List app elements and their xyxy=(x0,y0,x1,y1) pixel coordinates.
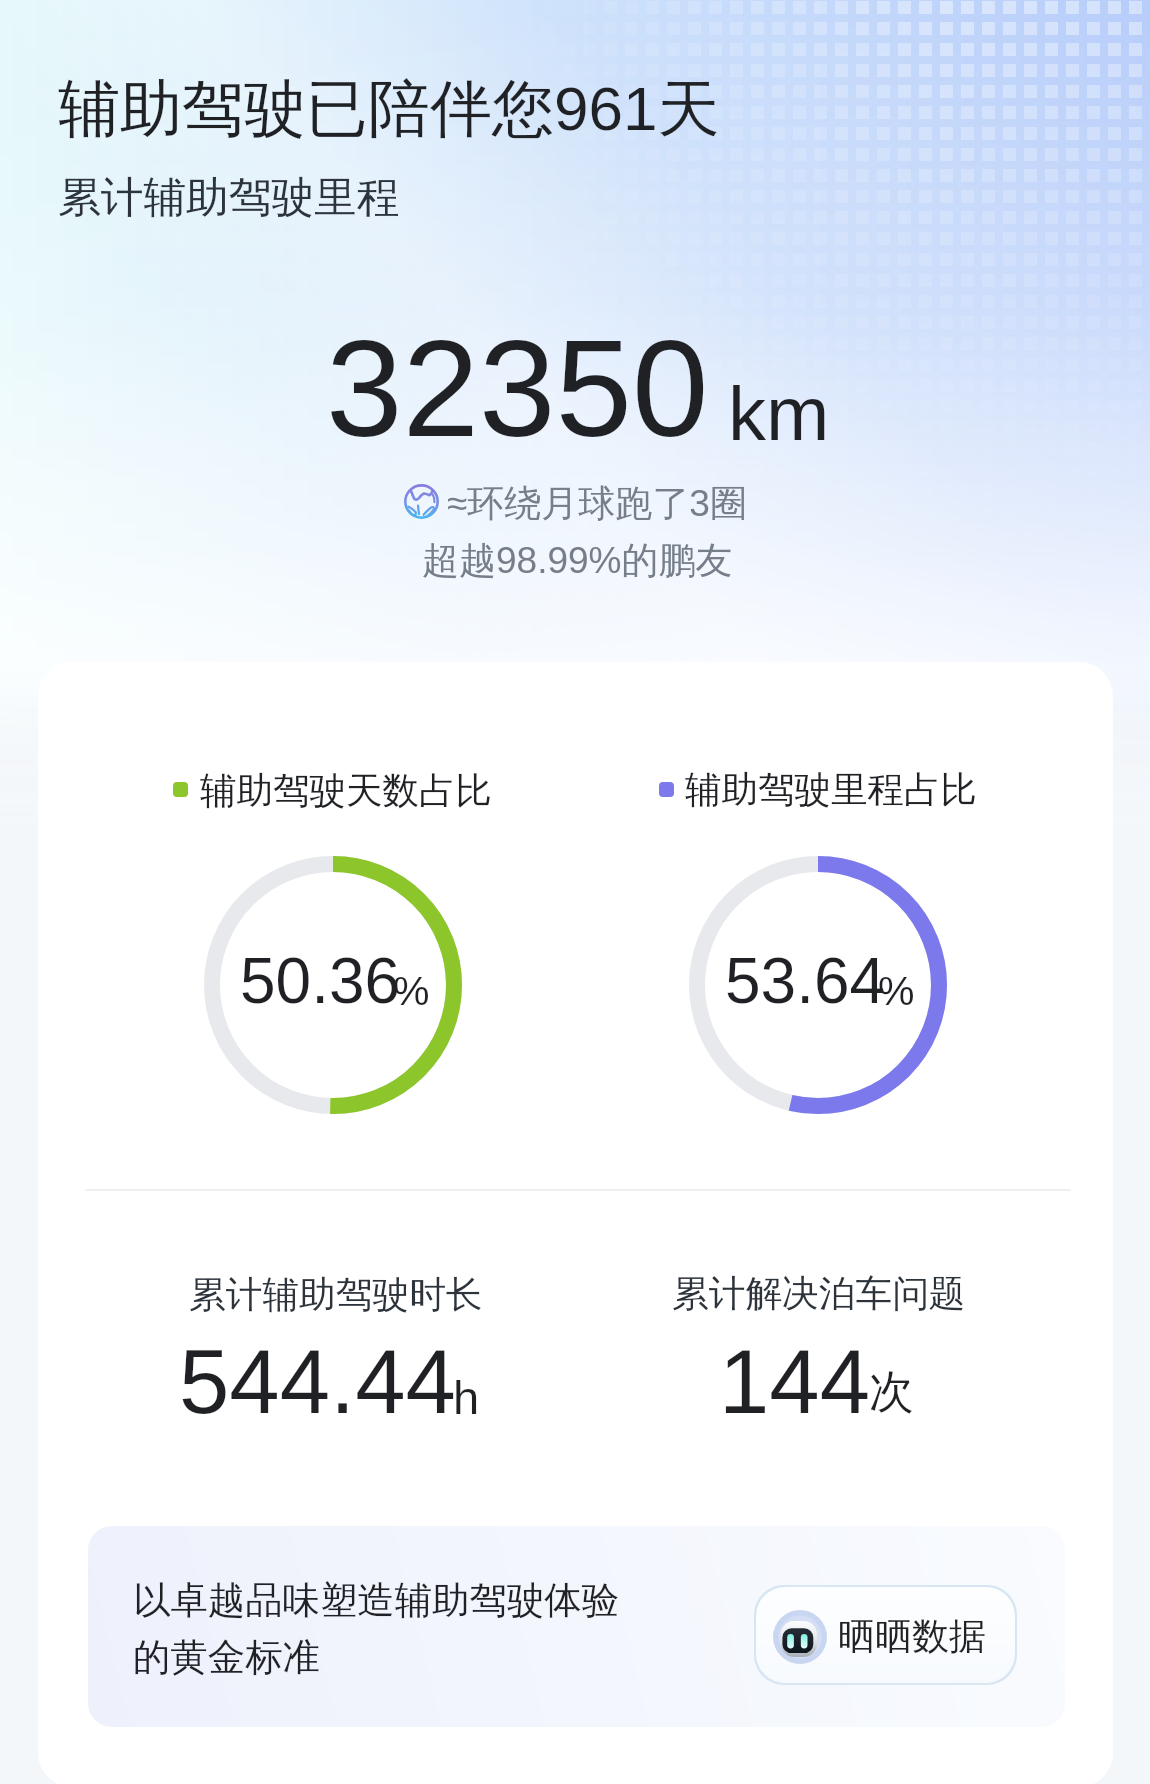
staticText: 以卓越品味塑造辅助驾驶体验 xyxy=(133,1577,620,1624)
staticText: h xyxy=(453,1371,480,1424)
staticText: km xyxy=(728,371,830,456)
staticText: % xyxy=(878,968,915,1014)
staticText: 辅助驾驶里程占比 xyxy=(685,767,977,813)
staticText: 544.44 xyxy=(179,1331,456,1432)
staticText: 累计解决泊车问题 xyxy=(672,1271,966,1317)
staticText: 50.36 xyxy=(240,945,401,1017)
staticText: 53.64 xyxy=(725,945,886,1017)
staticText: 的黄金标准 xyxy=(133,1634,320,1681)
staticText: 超越98.99%的鹏友 xyxy=(422,537,733,584)
staticText: 次 xyxy=(869,1364,914,1421)
staticText: % xyxy=(393,968,430,1014)
staticText: 32350 xyxy=(326,312,709,466)
staticText: ≈环绕月球跑了3圈 xyxy=(447,480,747,527)
staticText: 累计辅助驾驶里程 xyxy=(58,171,400,225)
staticText: 累计辅助驾驶时长 xyxy=(189,1272,483,1318)
staticText: 辅助驾驶已陪伴您961天 xyxy=(58,70,720,148)
other: AI assistant xyxy=(773,1610,827,1664)
staticText: 辅助驾驶天数占比 xyxy=(200,768,492,814)
staticText: 晒晒数据 xyxy=(838,1613,986,1660)
button[interactable]: AI assistant xyxy=(756,1587,1015,1683)
staticText: 144 xyxy=(719,1331,870,1432)
